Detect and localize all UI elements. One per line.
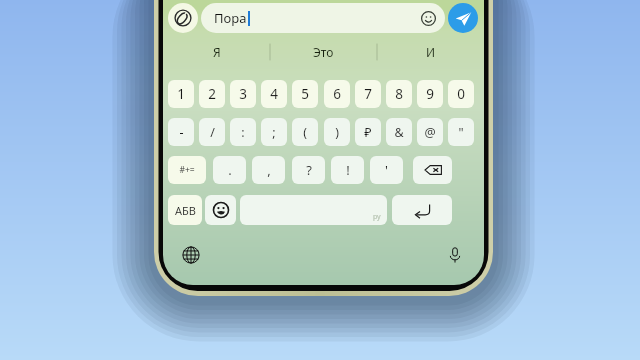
button[interactable]: 3 xyxy=(230,80,256,108)
staticText: 1 xyxy=(177,85,185,103)
staticText: ₽ xyxy=(364,124,372,141)
staticText: ! xyxy=(346,161,350,179)
staticText: @ xyxy=(424,124,436,141)
staticText: / xyxy=(210,124,215,141)
button[interactable]: Я xyxy=(163,38,270,66)
staticText: 2 xyxy=(208,85,216,103)
button[interactable]: Это xyxy=(270,38,377,66)
staticText: И xyxy=(426,44,436,60)
staticText: 6 xyxy=(333,85,341,103)
button[interactable]: Enter xyxy=(392,195,452,225)
button[interactable]: Space xyxy=(240,195,387,225)
button[interactable]: @ xyxy=(417,118,443,146)
button[interactable]: ! xyxy=(331,156,364,184)
staticText: 4 xyxy=(270,85,278,103)
staticText: 0 xyxy=(457,85,465,103)
staticText: 7 xyxy=(364,85,372,103)
button[interactable]: Change language xyxy=(179,243,203,267)
staticText: 9 xyxy=(426,85,434,103)
button[interactable]: , xyxy=(252,156,285,184)
staticText: ру xyxy=(373,212,381,222)
button[interactable]: . xyxy=(213,156,246,184)
button[interactable]: ; xyxy=(261,118,287,146)
staticText: : xyxy=(241,124,245,141)
button[interactable]: - xyxy=(168,118,194,146)
button[interactable]: / xyxy=(199,118,225,146)
staticText: 8 xyxy=(395,85,403,103)
button[interactable]: 5 xyxy=(292,80,318,108)
button[interactable]: ₽ xyxy=(355,118,381,146)
staticText: & xyxy=(394,124,404,141)
button[interactable]: 4 xyxy=(261,80,287,108)
staticText: " xyxy=(458,124,464,141)
button[interactable]: 9 xyxy=(417,80,443,108)
button[interactable]: 2 xyxy=(199,80,225,108)
button[interactable]: И xyxy=(377,38,484,66)
staticText: 5 xyxy=(301,85,309,103)
staticText: Это xyxy=(313,44,334,60)
button[interactable]: Send xyxy=(448,3,478,33)
staticText: ( xyxy=(303,124,307,141)
button[interactable]: 8 xyxy=(386,80,412,108)
button[interactable]: Attach xyxy=(168,3,198,33)
staticText: Я xyxy=(213,44,221,60)
button[interactable]: ( xyxy=(292,118,318,146)
staticText: - xyxy=(179,124,184,141)
button[interactable]: #+= xyxy=(168,156,206,184)
staticText: 3 xyxy=(239,85,247,103)
button[interactable]: 6 xyxy=(324,80,350,108)
button[interactable]: Voice input xyxy=(443,243,467,267)
button[interactable]: Backspace xyxy=(413,156,452,184)
staticText: Пора xyxy=(214,9,247,27)
button[interactable]: 7 xyxy=(355,80,381,108)
staticText: ) xyxy=(335,124,339,141)
button[interactable]: & xyxy=(386,118,412,146)
staticText: . xyxy=(228,161,232,179)
staticText: #+= xyxy=(179,164,195,176)
button[interactable]: Пора xyxy=(201,3,445,33)
button[interactable]: : xyxy=(230,118,256,146)
button[interactable]: Emoji xyxy=(419,9,437,27)
staticText: ; xyxy=(272,124,276,141)
button[interactable]: ' xyxy=(370,156,403,184)
button[interactable]: " xyxy=(448,118,474,146)
button[interactable]: Emoji keyboard xyxy=(205,195,236,225)
button[interactable]: АБВ xyxy=(168,195,202,225)
staticText: , xyxy=(267,161,271,179)
button[interactable]: 0 xyxy=(448,80,474,108)
staticText: АБВ xyxy=(175,203,196,218)
button[interactable]: 1 xyxy=(168,80,194,108)
button[interactable]: ) xyxy=(324,118,350,146)
button[interactable]: ? xyxy=(292,156,325,184)
staticText: ? xyxy=(306,161,312,179)
staticText: ' xyxy=(385,161,388,179)
